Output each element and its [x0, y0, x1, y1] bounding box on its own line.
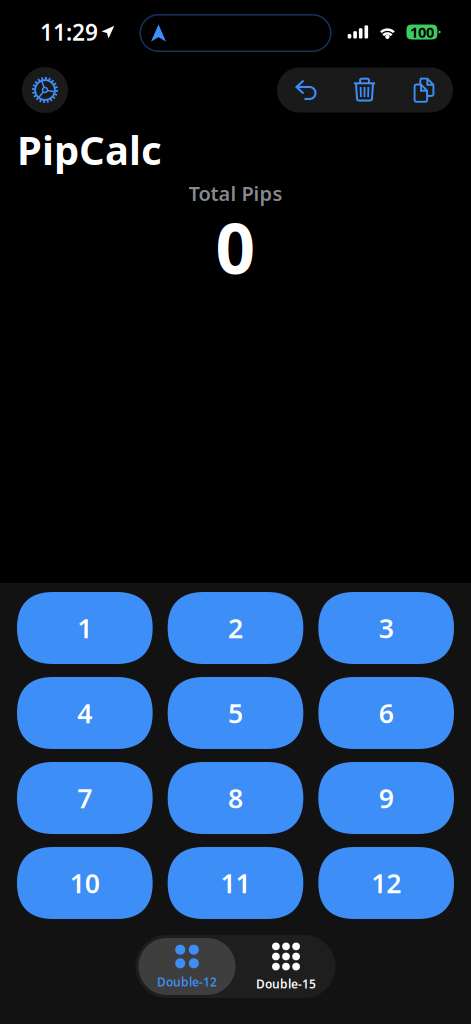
- button[interactable]: Clear: [335, 67, 394, 112]
- button[interactable]: 3: [318, 592, 454, 664]
- staticText: 4: [77, 695, 92, 731]
- button[interactable]: 1: [17, 592, 153, 664]
- button[interactable]: 9: [318, 762, 454, 834]
- staticText: 1: [77, 610, 92, 646]
- staticText: 6: [379, 695, 394, 731]
- staticText: 11: [220, 865, 250, 901]
- button[interactable]: 6: [318, 677, 454, 749]
- button[interactable]: 4: [17, 677, 153, 749]
- button[interactable]: Undo: [277, 67, 335, 112]
- staticText: Double-15: [256, 976, 316, 992]
- staticText: 0: [215, 201, 255, 293]
- button[interactable]: 12: [318, 847, 454, 919]
- staticText: 5: [228, 695, 243, 731]
- staticText: PipCalc: [17, 123, 162, 176]
- button[interactable]: 11: [168, 847, 303, 919]
- staticText: 3: [379, 610, 394, 646]
- staticText: 8: [228, 780, 243, 816]
- staticText: 11:29: [40, 17, 98, 47]
- button[interactable]: 10: [17, 847, 153, 919]
- staticText: Double-12: [157, 974, 217, 990]
- staticText: 2: [228, 610, 243, 646]
- staticText: 100: [410, 22, 434, 42]
- staticText: 9: [379, 780, 394, 816]
- button[interactable]: Settings: [22, 67, 68, 113]
- staticText: 12: [371, 865, 401, 901]
- button[interactable]: 5: [168, 677, 303, 749]
- staticText: 10: [70, 865, 100, 901]
- button[interactable]: 7: [17, 762, 153, 834]
- button[interactable]: Double-12: [138, 938, 235, 995]
- button[interactable]: 2: [168, 592, 303, 664]
- staticText: Total Pips: [188, 180, 282, 206]
- button[interactable]: History: [394, 67, 453, 112]
- button[interactable]: 8: [168, 762, 303, 834]
- staticText: 7: [77, 780, 92, 816]
- button[interactable]: Double-15: [239, 938, 332, 995]
